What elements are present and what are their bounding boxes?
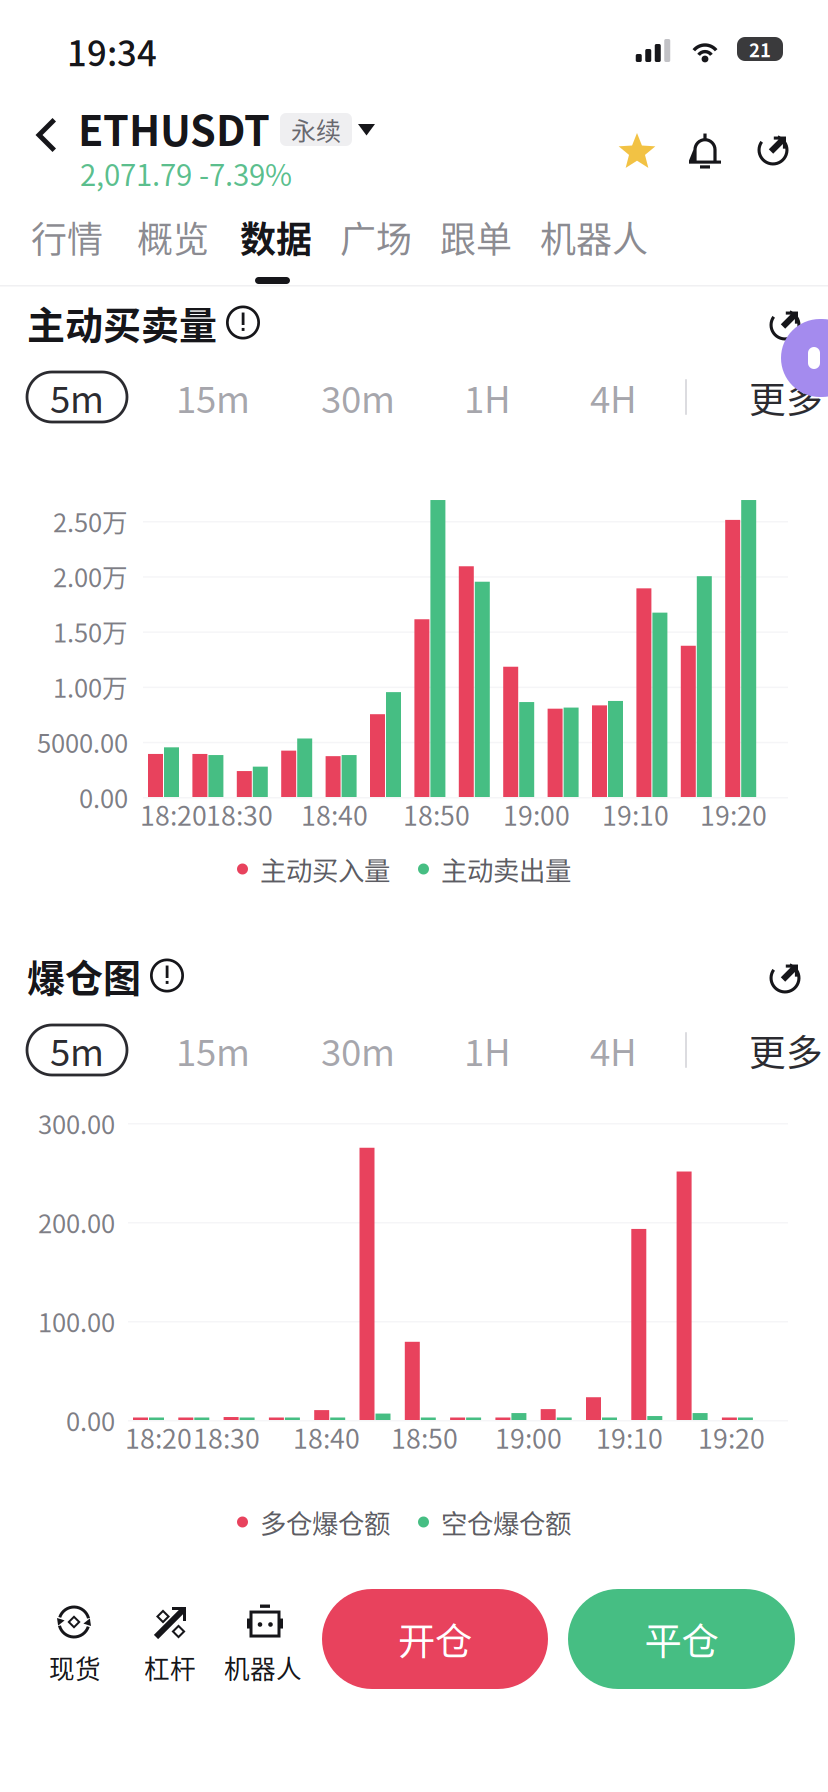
button[interactable]: 30m xyxy=(321,1025,395,1075)
button[interactable]: 广场 xyxy=(324,201,428,273)
staticText: 0.00 xyxy=(66,1401,115,1439)
staticText: 200.00 xyxy=(38,1203,115,1241)
button[interactable]: 分享 xyxy=(743,120,803,180)
staticText: 18:30 xyxy=(206,795,273,833)
staticText: 1.50万 xyxy=(53,613,128,650)
staticText: 杠杆 xyxy=(144,1649,196,1686)
staticText: 18:30 xyxy=(193,1418,260,1456)
staticText: 平仓 xyxy=(644,1612,718,1666)
staticText: 机器人 xyxy=(540,211,648,263)
staticText: 19:20 xyxy=(700,795,767,833)
button[interactable]: 杠杆 xyxy=(136,1596,204,1688)
staticText: 19:10 xyxy=(596,1418,663,1456)
button[interactable]: 行情 xyxy=(15,201,119,273)
staticText: 4H xyxy=(590,370,637,424)
button[interactable]: 跟单 xyxy=(424,201,528,273)
staticText: 主动卖出量 xyxy=(441,850,571,888)
button[interactable]: 概览 xyxy=(121,201,225,273)
staticText: 开仓 xyxy=(398,1612,472,1666)
staticText: 4H xyxy=(590,1023,637,1077)
staticText: 1H xyxy=(464,370,511,424)
staticText: 19:20 xyxy=(698,1418,765,1456)
button[interactable]: 数据 xyxy=(224,201,328,273)
staticText: 更多 xyxy=(749,1023,823,1077)
staticText: 主动买卖量 xyxy=(27,295,217,350)
staticText: 30m xyxy=(321,370,395,424)
button[interactable]: 返回 xyxy=(22,106,70,164)
button[interactable]: 全屏查看主动买卖量 xyxy=(757,297,813,353)
staticText: 15m xyxy=(176,1023,250,1077)
staticText: 5m xyxy=(50,1023,104,1077)
button[interactable]: 收藏 xyxy=(608,123,666,181)
button[interactable]: 5m xyxy=(27,372,127,422)
staticText: 爆仓图 xyxy=(27,948,141,1003)
button[interactable]: 30m xyxy=(321,372,395,422)
staticText: 300.00 xyxy=(38,1104,115,1142)
staticText: 19:00 xyxy=(503,795,570,833)
button[interactable]: 机器人 xyxy=(216,1596,310,1688)
staticText: 永续 xyxy=(291,111,341,148)
button[interactable]: 价格提醒 xyxy=(675,121,735,181)
staticText: ETHUSDT xyxy=(78,98,270,158)
staticText: 15m xyxy=(176,370,250,424)
staticText: 0.00 xyxy=(79,778,128,816)
staticText: 19:00 xyxy=(495,1418,562,1456)
staticText: 概览 xyxy=(137,211,209,263)
staticText: 空仓爆仓额 xyxy=(441,1503,571,1541)
staticText: 2,071.79 -7.39% xyxy=(80,152,292,194)
staticText: 5m xyxy=(50,370,104,424)
staticText: 18:20 xyxy=(140,795,207,833)
button[interactable]: 15m xyxy=(176,1025,250,1075)
button[interactable]: 4H xyxy=(590,1025,637,1075)
staticText: 数据 xyxy=(240,211,312,263)
staticText: 18:50 xyxy=(403,795,470,833)
staticText: 广场 xyxy=(340,211,412,263)
staticText: 18:50 xyxy=(391,1418,458,1456)
staticText: 行情 xyxy=(31,211,103,263)
button[interactable]: 15m xyxy=(176,372,250,422)
staticText: 30m xyxy=(321,1023,395,1077)
button[interactable]: 1H xyxy=(464,372,511,422)
button[interactable]: 更多 xyxy=(749,372,823,422)
button[interactable]: 4H xyxy=(590,372,637,422)
button[interactable]: 更多 xyxy=(749,1025,823,1075)
staticText: 1.00万 xyxy=(53,668,128,705)
staticText: 主动买入量 xyxy=(260,850,390,888)
button[interactable]: 开仓 xyxy=(322,1589,548,1689)
button[interactable]: 现货 xyxy=(40,1596,108,1688)
staticText: 18:40 xyxy=(301,795,368,833)
button[interactable]: 5m xyxy=(27,1025,127,1075)
staticText: 1H xyxy=(464,1023,511,1077)
staticText: 更多 xyxy=(749,370,823,424)
staticText: 19:10 xyxy=(602,795,669,833)
staticText: 21 xyxy=(749,35,771,62)
staticText: 多仓爆仓额 xyxy=(260,1503,390,1541)
button[interactable]: 1H xyxy=(464,1025,511,1075)
staticText: 18:40 xyxy=(293,1418,360,1456)
staticText: 机器人 xyxy=(224,1649,302,1686)
staticText: 现货 xyxy=(49,1649,101,1686)
staticText: 跟单 xyxy=(440,211,512,263)
button[interactable]: 机器人 xyxy=(524,201,664,273)
staticText: 2.50万 xyxy=(53,502,128,540)
staticText: 5000.00 xyxy=(37,723,128,760)
staticText: 18:20 xyxy=(125,1418,192,1456)
staticText: 100.00 xyxy=(38,1302,115,1340)
staticText: 2.00万 xyxy=(53,558,128,595)
staticText: 19:34 xyxy=(67,26,157,76)
button[interactable]: 全屏查看爆仓图 xyxy=(757,950,813,1006)
button[interactable]: 平仓 xyxy=(568,1589,795,1689)
